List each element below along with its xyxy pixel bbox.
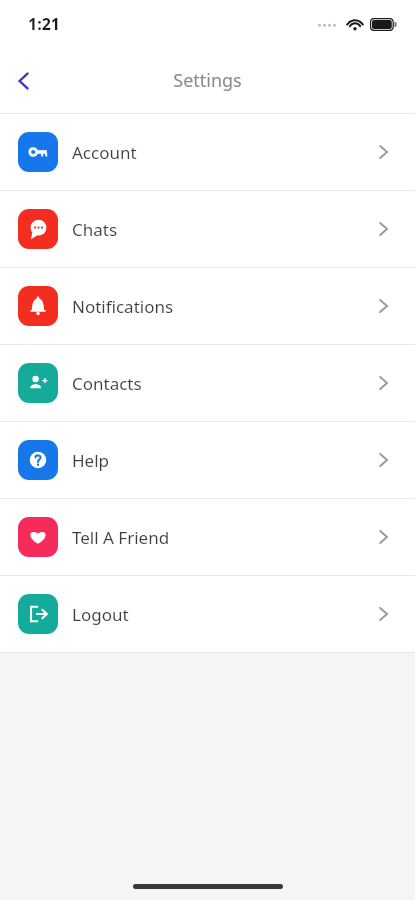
staticText: Tell A Friend — [72, 526, 170, 549]
staticText: Help — [72, 449, 110, 472]
button[interactable]: Account — [0, 114, 415, 190]
staticText: Notifications — [72, 295, 174, 318]
staticText: Chats — [72, 218, 118, 241]
button[interactable]: Logout — [0, 576, 415, 652]
staticText: 1:21 — [28, 13, 60, 35]
button[interactable]: Contacts — [0, 345, 415, 421]
staticText: Contacts — [72, 372, 142, 395]
button[interactable]: Help — [0, 422, 415, 498]
button[interactable]: Notifications — [0, 268, 415, 344]
staticText: Settings — [173, 68, 242, 93]
staticText: Account — [72, 141, 137, 164]
staticText: Logout — [72, 603, 129, 626]
button[interactable]: Chats — [0, 191, 415, 267]
button[interactable]: Tell A Friend — [0, 499, 415, 575]
button[interactable]: Back — [0, 57, 48, 105]
